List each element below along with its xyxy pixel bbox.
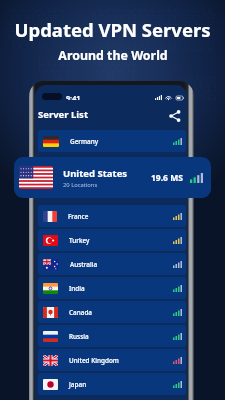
staticText: 9:41 (66, 93, 81, 100)
button[interactable]: Russia (38, 325, 186, 347)
button[interactable]: Server List (38, 107, 89, 122)
button[interactable]: Share (169, 110, 181, 122)
staticText: Turkey (69, 236, 90, 245)
staticText: Germany (70, 137, 99, 146)
button[interactable]: United Kingdom (38, 349, 186, 371)
staticText: Updated VPN Servers (14, 17, 211, 42)
staticText: 19.6 MS (151, 172, 183, 184)
staticText: Australia (70, 260, 98, 269)
staticText: France (68, 212, 89, 221)
staticText: Canada (69, 308, 92, 317)
staticText: Japan (69, 380, 87, 389)
button[interactable]: Japan (38, 373, 186, 395)
staticText: 20 Locations (63, 181, 98, 189)
button[interactable]: United States (14, 157, 211, 198)
staticText: India (69, 284, 85, 293)
button[interactable]: Germany (38, 130, 186, 152)
button[interactable]: Turkey (38, 229, 186, 251)
button[interactable]: India (38, 277, 186, 299)
staticText: Russia (69, 332, 89, 341)
staticText: Around the World (58, 47, 168, 64)
button[interactable]: Australia (38, 253, 186, 275)
button[interactable]: Canada (38, 301, 186, 323)
button[interactable]: France (38, 205, 186, 227)
staticText: United States (63, 167, 128, 180)
staticText: United Kingdom (69, 356, 119, 365)
staticText: Server List (38, 108, 89, 121)
